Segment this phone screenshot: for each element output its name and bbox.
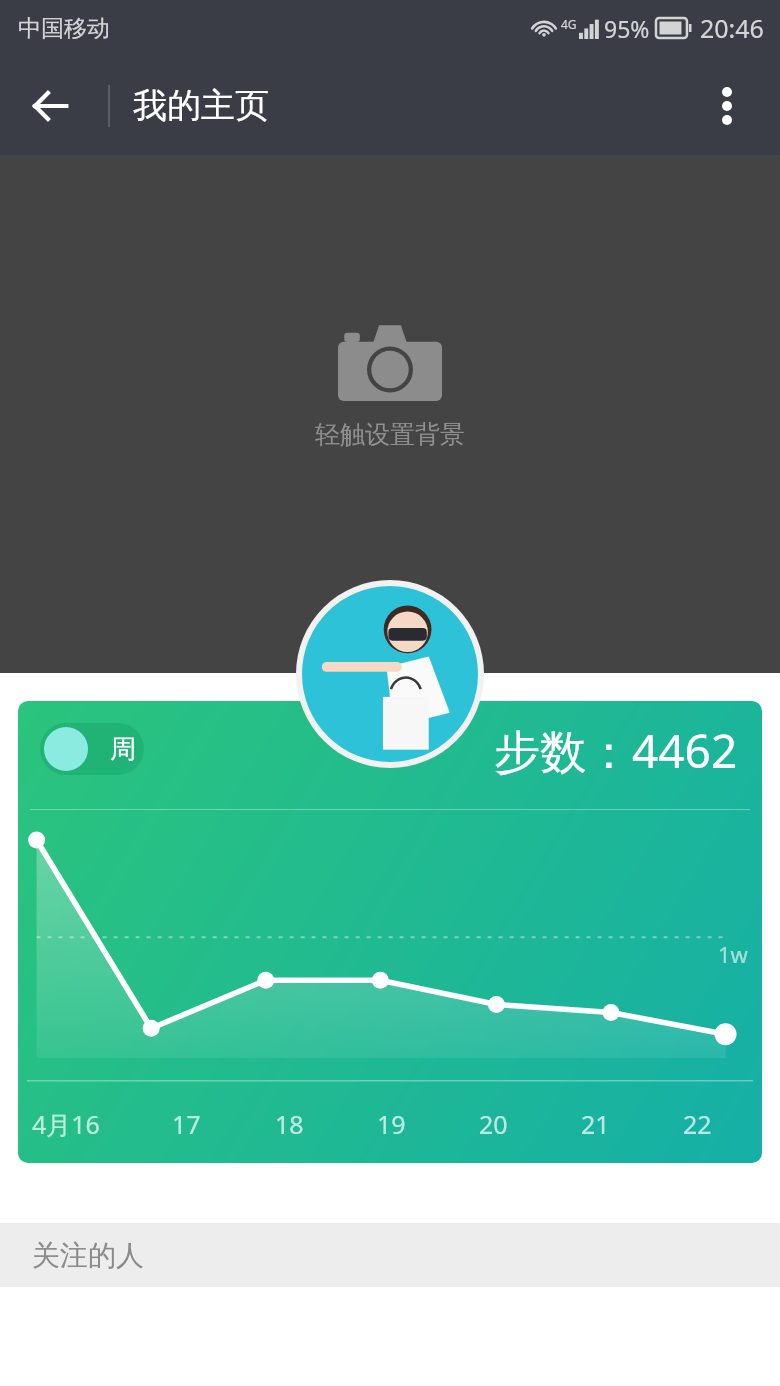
button[interactable]: 周 xyxy=(18,701,762,1163)
staticText: 关注的人 xyxy=(32,1238,144,1273)
button[interactable]: More options xyxy=(692,71,762,141)
button[interactable]: 轻触设置背景 xyxy=(0,155,780,673)
staticText: 中国移动 xyxy=(18,14,110,43)
staticText: 20:46 xyxy=(700,11,764,45)
staticText: 21 xyxy=(581,1107,610,1141)
staticText: 95% xyxy=(604,13,650,44)
staticText: 轻触设置背景 xyxy=(315,419,465,450)
staticText: 周 xyxy=(110,733,136,766)
staticText: 19 xyxy=(377,1107,406,1141)
button[interactable]: 周 xyxy=(40,723,144,775)
staticText: 1w xyxy=(718,939,748,969)
staticText: 4月16 xyxy=(32,1107,100,1141)
staticText: 步数：4462 xyxy=(494,719,738,782)
staticText: 我的主页 xyxy=(133,84,269,127)
staticText: 17 xyxy=(172,1107,201,1141)
staticText: 22 xyxy=(683,1107,712,1141)
button[interactable]: Profile photo xyxy=(296,580,484,768)
staticText: 4G xyxy=(561,16,577,32)
staticText: 20 xyxy=(479,1107,508,1141)
staticText: 18 xyxy=(275,1107,304,1141)
button[interactable]: Back xyxy=(14,70,86,142)
